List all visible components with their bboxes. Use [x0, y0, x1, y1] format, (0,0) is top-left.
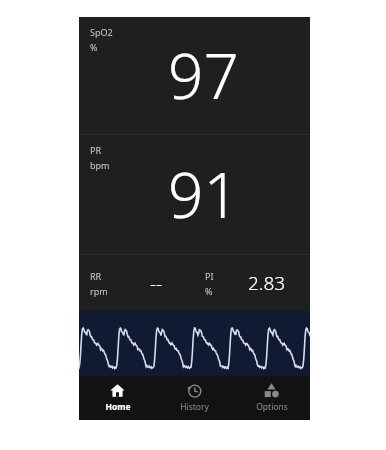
staticText: bpm [90, 159, 110, 171]
staticText: rpm [90, 285, 108, 297]
staticText: PR [90, 144, 102, 156]
staticText: Options [256, 401, 288, 413]
button[interactable]: Options [233, 376, 310, 420]
staticText: History [180, 401, 209, 413]
button[interactable]: History [156, 376, 233, 420]
button[interactable]: Home [79, 376, 156, 420]
staticText: PI [205, 270, 214, 282]
staticText: % [205, 285, 213, 297]
staticText: -- [150, 270, 163, 296]
staticText: 97 [168, 33, 239, 117]
staticText: 2.83 [248, 270, 286, 296]
staticText: Home [105, 401, 131, 413]
staticText: RR [90, 270, 102, 282]
staticText: 91 [168, 152, 239, 236]
staticText: SpO2 [90, 26, 113, 38]
staticText: % [90, 41, 98, 53]
